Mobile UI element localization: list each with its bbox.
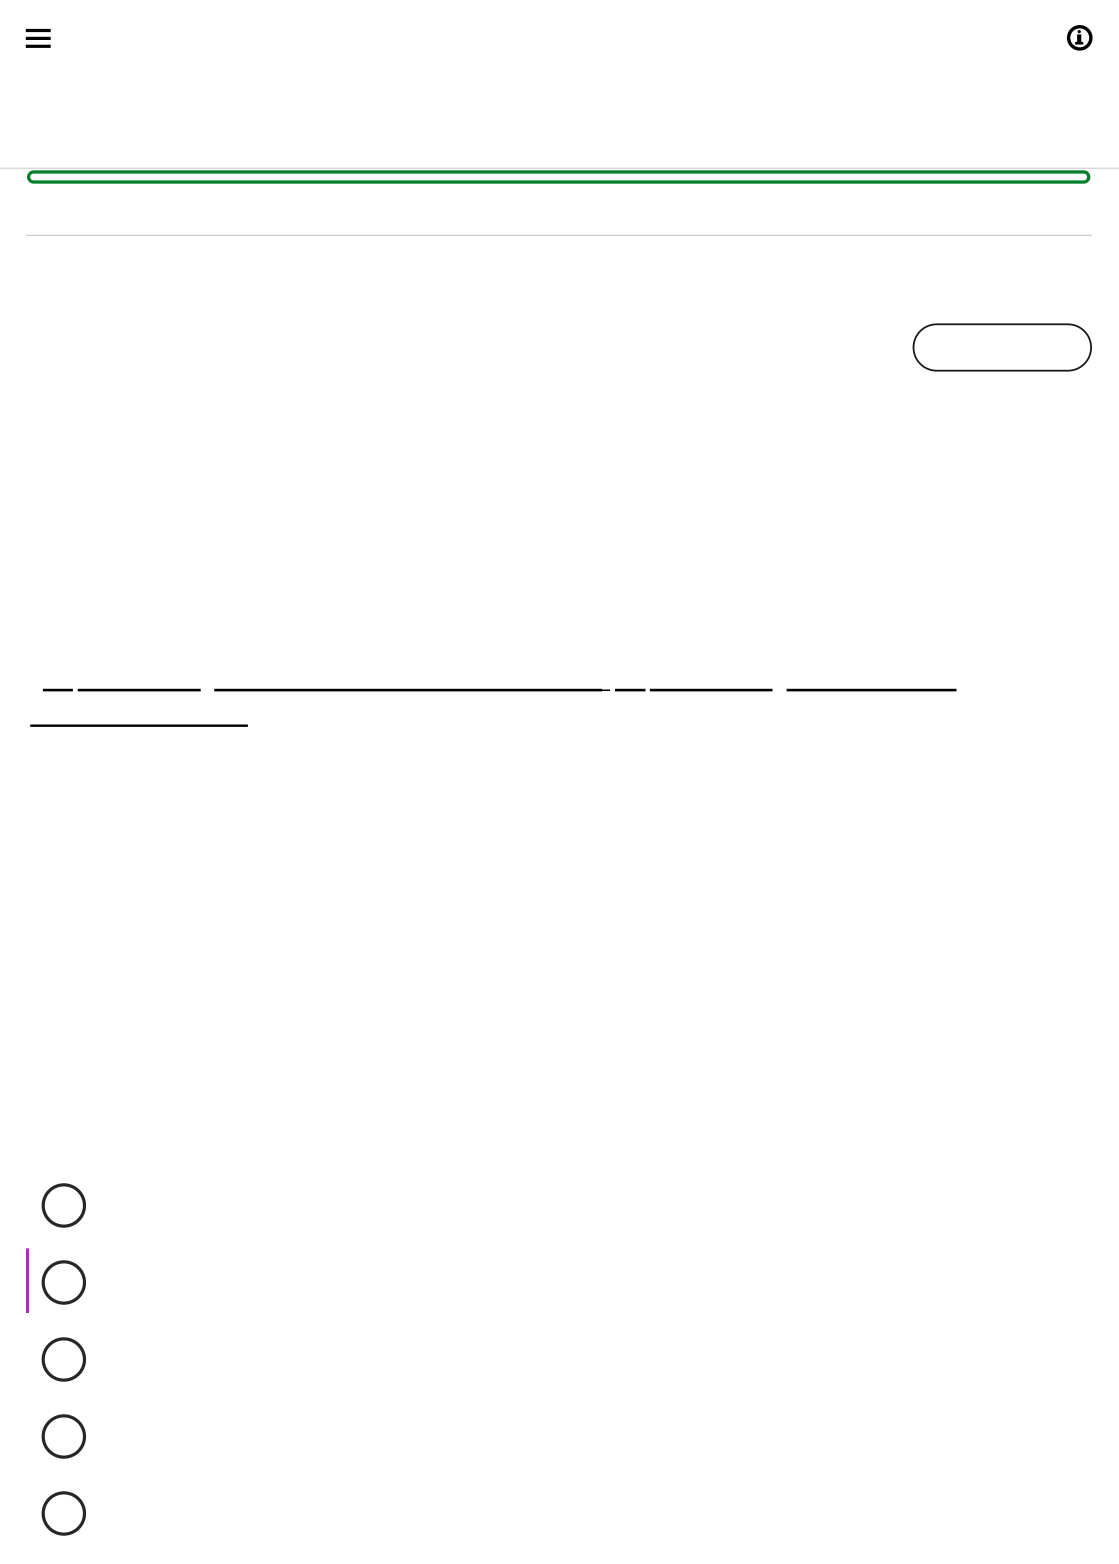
button[interactable]: Option xyxy=(0,1167,1119,1244)
button[interactable]: Continue xyxy=(913,323,1092,372)
button[interactable]: Option xyxy=(0,1475,1119,1552)
button[interactable]: Option xyxy=(0,1398,1119,1475)
button[interactable]: Information xyxy=(1051,0,1119,67)
button[interactable]: Option xyxy=(0,1321,1119,1398)
button[interactable]: Menu xyxy=(0,0,67,64)
button[interactable]: Selected option xyxy=(0,1244,1119,1321)
